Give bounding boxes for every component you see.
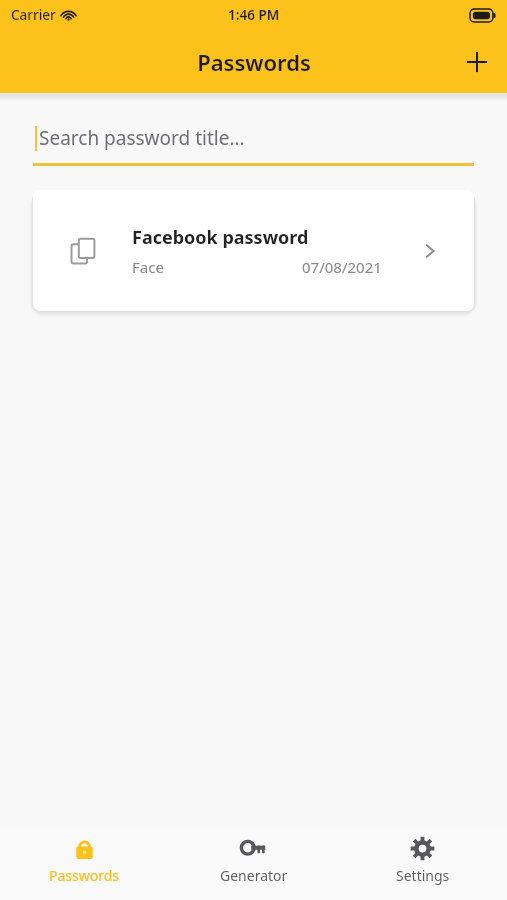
button[interactable]: Settings [338,828,507,900]
staticText: Generator [220,866,288,885]
staticText: Passwords [197,47,311,77]
staticText: Search password title... [39,125,245,151]
staticText: Passwords [49,866,120,885]
staticText: Carrier [11,6,56,24]
staticText: 1:46 PM [228,6,280,24]
staticText: Face [132,257,164,277]
button[interactable]: Search password title... [33,118,474,168]
staticText: 07/08/2021 [302,257,382,277]
button[interactable]: Generator [169,828,338,900]
button[interactable]: Facebook password [33,190,474,311]
staticText: Facebook password [132,225,309,250]
button[interactable]: Passwords [0,828,169,900]
button[interactable]: Add password [454,39,500,85]
staticText: Settings [396,866,450,885]
